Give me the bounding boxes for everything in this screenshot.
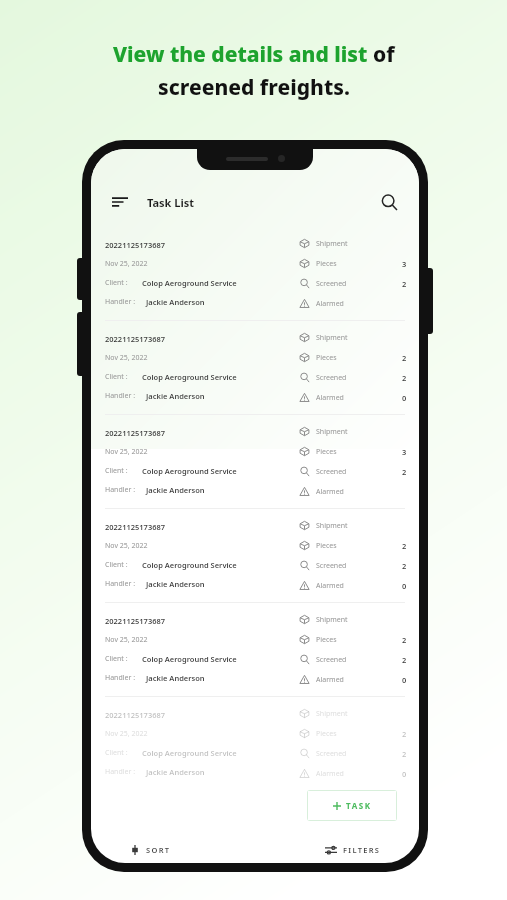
staticText: Shipment xyxy=(316,615,348,625)
staticText: 20221125173687 xyxy=(105,334,166,344)
staticText: 2 xyxy=(402,729,407,739)
button[interactable]: 20221125173687 xyxy=(91,227,419,320)
staticText: 20221125173687 xyxy=(105,428,166,438)
staticText: Jackie Anderson xyxy=(146,391,205,401)
staticText: Client : xyxy=(105,466,128,476)
staticText: Screened xyxy=(316,467,347,477)
staticText: 3 xyxy=(402,259,407,269)
button[interactable]: 20221125173687 xyxy=(91,509,419,602)
button[interactable]: TASK xyxy=(307,790,397,821)
staticText: Alarmed xyxy=(316,393,344,403)
staticText: Handler : xyxy=(105,297,136,307)
staticText: Nov 25, 2022 xyxy=(105,541,148,551)
button[interactable]: FILTERS xyxy=(317,840,389,860)
staticText: FILTERS xyxy=(343,845,381,855)
button[interactable]: Menu xyxy=(107,189,133,215)
staticText: 0 xyxy=(402,393,407,403)
staticText: 2 xyxy=(402,353,407,363)
staticText: Shipment xyxy=(316,239,348,249)
button[interactable]: SORT xyxy=(122,841,179,859)
staticText: Jackie Anderson xyxy=(146,767,205,777)
staticText: Jackie Anderson xyxy=(146,485,205,495)
staticText: 3 xyxy=(402,447,407,457)
staticText: 20221125173687 xyxy=(105,710,166,720)
staticText: Pieces xyxy=(316,353,337,363)
staticText: Pieces xyxy=(316,447,337,457)
staticText: 2 xyxy=(402,655,407,665)
staticText: Alarmed xyxy=(316,675,344,685)
staticText: Screened xyxy=(316,655,347,665)
staticText: 2 xyxy=(402,749,407,759)
staticText: Screened xyxy=(316,561,347,571)
button[interactable]: Search xyxy=(375,188,403,216)
staticText: 2 xyxy=(402,467,407,477)
staticText: View the details and list xyxy=(113,40,373,69)
staticText: SORT xyxy=(146,845,171,855)
staticText: Nov 25, 2022 xyxy=(105,447,148,457)
staticText: Nov 25, 2022 xyxy=(105,729,148,739)
staticText: Pieces xyxy=(316,541,337,551)
button[interactable]: 20221125173687 xyxy=(91,415,419,508)
staticText: Client : xyxy=(105,560,128,570)
staticText: 20221125173687 xyxy=(105,616,166,626)
staticText: TASK xyxy=(346,800,372,811)
staticText: Pieces xyxy=(316,635,337,645)
staticText: Colop Aeroground Service xyxy=(142,278,237,288)
button[interactable]: 20221125173687 xyxy=(91,697,419,790)
staticText: Screened xyxy=(316,749,347,759)
staticText: Pieces xyxy=(316,259,337,269)
staticText: Colop Aeroground Service xyxy=(142,466,237,476)
staticText: Client : xyxy=(105,278,128,288)
staticText: 0 xyxy=(402,581,407,591)
staticText: Shipment xyxy=(316,427,348,437)
staticText: 2 xyxy=(402,279,407,289)
staticText: 20221125173687 xyxy=(105,522,166,532)
staticText: of xyxy=(373,40,395,69)
staticText: Handler : xyxy=(105,673,136,683)
staticText: Colop Aeroground Service xyxy=(142,748,237,758)
staticText: 2 xyxy=(402,373,407,383)
staticText: Shipment xyxy=(316,709,348,719)
staticText: 2 xyxy=(402,635,407,645)
staticText: Shipment xyxy=(316,521,348,531)
staticText: Handler : xyxy=(105,767,136,777)
staticText: Jackie Anderson xyxy=(146,297,205,307)
staticText: Colop Aeroground Service xyxy=(142,560,237,570)
staticText: Colop Aeroground Service xyxy=(142,372,237,382)
staticText: Screened xyxy=(316,373,347,383)
staticText: Jackie Anderson xyxy=(146,579,205,589)
button[interactable]: 20221125173687 xyxy=(91,603,419,696)
staticText: 0 xyxy=(402,769,407,779)
staticText: Alarmed xyxy=(316,487,344,497)
staticText: Client : xyxy=(105,372,128,382)
staticText: Pieces xyxy=(316,729,337,739)
staticText: screened freights. xyxy=(158,73,350,102)
button[interactable]: 20221125173687 xyxy=(91,321,419,414)
staticText: 2 xyxy=(402,561,407,571)
staticText: Screened xyxy=(316,279,347,289)
staticText: Jackie Anderson xyxy=(146,673,205,683)
staticText: 20221125173687 xyxy=(105,240,166,250)
staticText: Task List xyxy=(147,195,194,210)
staticText: Alarmed xyxy=(316,299,344,309)
staticText: Alarmed xyxy=(316,769,344,779)
staticText: Handler : xyxy=(105,391,136,401)
staticText: Handler : xyxy=(105,579,136,589)
staticText: Client : xyxy=(105,748,128,758)
staticText: Nov 25, 2022 xyxy=(105,259,148,269)
staticText: 2 xyxy=(402,541,407,551)
staticText: Colop Aeroground Service xyxy=(142,654,237,664)
staticText: Client : xyxy=(105,654,128,664)
staticText: Nov 25, 2022 xyxy=(105,635,148,645)
staticText: 0 xyxy=(402,675,407,685)
staticText: Alarmed xyxy=(316,581,344,591)
staticText: Handler : xyxy=(105,485,136,495)
staticText: Shipment xyxy=(316,333,348,343)
staticText: Nov 25, 2022 xyxy=(105,353,148,363)
